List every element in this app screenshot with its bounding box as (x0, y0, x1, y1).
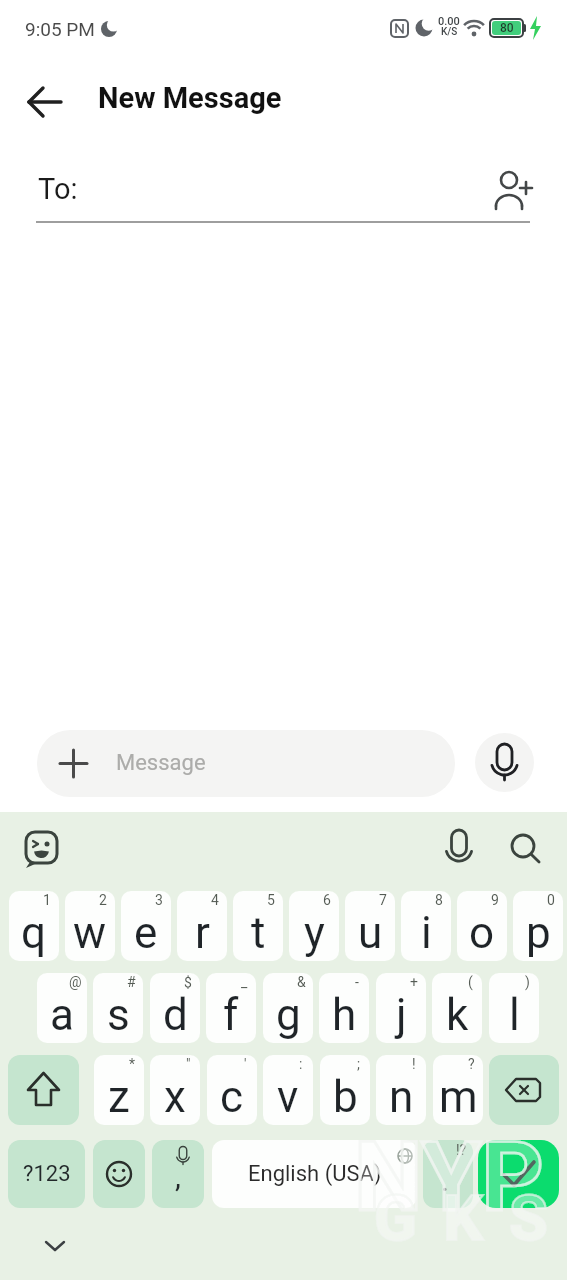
staticText: 0.00 (438, 15, 460, 28)
button[interactable]: z (94, 1055, 144, 1125)
staticText: 8 (435, 892, 443, 908)
staticText: u (358, 907, 383, 959)
button[interactable]: u (345, 891, 395, 961)
button[interactable]: o (457, 891, 507, 961)
staticText: 0 (547, 892, 555, 908)
staticText: @ (69, 974, 82, 990)
staticText: . (441, 1163, 449, 1198)
button[interactable]: j (376, 973, 426, 1043)
staticText: q (21, 907, 47, 959)
staticText: s (107, 989, 130, 1041)
staticText: m (439, 1071, 478, 1123)
staticText: w (73, 907, 107, 959)
staticText: * (129, 1056, 136, 1072)
button[interactable]: t (233, 891, 283, 961)
button[interactable]: a (37, 973, 87, 1043)
button[interactable] (478, 1140, 559, 1208)
staticText: i (421, 907, 432, 959)
staticText: f (223, 989, 239, 1041)
staticText: ) (525, 974, 530, 990)
button[interactable] (16, 822, 68, 874)
staticText: K/S (441, 26, 458, 38)
staticText: 3 (155, 892, 163, 908)
staticText: n (389, 1071, 414, 1123)
button[interactable]: English (USA) (212, 1140, 417, 1208)
button[interactable]: c (207, 1055, 257, 1125)
staticText: NYP (354, 1120, 544, 1234)
staticText: & (297, 974, 306, 990)
staticText: ( (468, 974, 473, 990)
button[interactable] (475, 733, 534, 792)
button[interactable]: d (150, 973, 200, 1043)
button[interactable]: s (93, 973, 143, 1043)
button[interactable] (8, 1055, 79, 1125)
staticText: 9:05 PM (25, 18, 95, 40)
staticText: x (164, 1071, 186, 1123)
button[interactable]: Message (37, 730, 455, 797)
button[interactable] (18, 80, 62, 124)
staticText: ? (468, 1056, 475, 1072)
staticText: 4 (211, 892, 219, 908)
staticText: o (469, 907, 495, 959)
button[interactable]: g (263, 973, 313, 1043)
button[interactable]: p (513, 891, 563, 961)
staticText: 2 (99, 892, 107, 908)
button[interactable]: f (206, 973, 256, 1043)
staticText: t (251, 907, 266, 959)
button[interactable] (35, 1232, 75, 1260)
button[interactable] (499, 822, 551, 874)
button[interactable]: m (433, 1055, 483, 1125)
button[interactable]: . (423, 1140, 473, 1208)
staticText: New Message (98, 81, 282, 115)
staticText: To: (38, 172, 78, 206)
staticText: c (220, 1071, 244, 1123)
staticText: 7 (379, 892, 387, 908)
staticText: 5 (267, 892, 275, 908)
staticText: + (410, 974, 418, 990)
staticText: v (277, 1071, 299, 1123)
staticText: NYP (354, 1120, 544, 1234)
button[interactable] (93, 1140, 145, 1208)
staticText: ' (244, 1056, 247, 1072)
staticText: , (175, 1159, 181, 1194)
staticText: $ (184, 974, 192, 990)
staticText: 9 (491, 892, 499, 908)
staticText: g (276, 989, 301, 1041)
button[interactable]: i (401, 891, 451, 961)
staticText: GKS (374, 1182, 567, 1256)
staticText: ! (412, 1056, 416, 1072)
staticText: h (332, 989, 357, 1041)
staticText: English (USA) (248, 1161, 382, 1187)
staticText: e (134, 907, 158, 959)
button[interactable]: ?123 (8, 1140, 85, 1208)
button[interactable]: n (376, 1055, 426, 1125)
staticText: 1 (43, 892, 51, 908)
button[interactable]: l (489, 973, 539, 1043)
button[interactable]: h (319, 973, 369, 1043)
staticText: !? (456, 1142, 467, 1158)
button[interactable]: k (432, 973, 482, 1043)
staticText: j (396, 989, 407, 1041)
staticText: y (304, 907, 325, 959)
button[interactable]: v (263, 1055, 313, 1125)
staticText: r (195, 907, 210, 959)
button[interactable]: b (320, 1055, 370, 1125)
staticText: 80 (500, 21, 514, 35)
staticText: - (355, 974, 359, 990)
staticText: l (509, 989, 520, 1041)
button[interactable]: r (177, 891, 227, 961)
button[interactable]: w (65, 891, 115, 961)
button[interactable]: x (150, 1055, 200, 1125)
button[interactable]: , (152, 1140, 204, 1208)
button[interactable] (489, 1055, 559, 1125)
staticText: # (127, 974, 136, 990)
staticText: b (333, 1071, 358, 1123)
staticText: " (186, 1056, 191, 1072)
button[interactable] (433, 822, 485, 874)
button[interactable]: q (9, 891, 59, 961)
staticText: a (50, 989, 74, 1041)
button[interactable]: y (289, 891, 339, 961)
button[interactable] (486, 161, 538, 213)
staticText: k (446, 989, 469, 1041)
button[interactable]: e (121, 891, 171, 961)
